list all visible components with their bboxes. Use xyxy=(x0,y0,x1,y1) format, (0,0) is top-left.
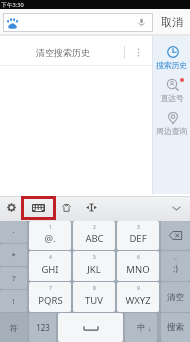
staticText: 周边查询 xyxy=(156,126,187,136)
staticText: PQRS xyxy=(38,294,63,307)
staticText: 取消 xyxy=(161,15,183,29)
staticText: :) xyxy=(173,263,178,275)
button[interactable]: 1 xyxy=(29,221,71,250)
staticText: o xyxy=(174,256,177,261)
staticText: ! xyxy=(12,296,15,306)
button[interactable]: ! xyxy=(0,290,27,312)
staticText: JKL xyxy=(87,263,101,276)
staticText: 下午3:30 xyxy=(1,1,24,9)
staticText: ABC xyxy=(85,232,104,245)
button[interactable]: 2 xyxy=(73,221,115,250)
button[interactable]: 取消 xyxy=(154,10,190,33)
button[interactable]: Hide keyboard xyxy=(168,200,185,217)
button[interactable]: Backspace xyxy=(161,221,190,250)
staticText: 6 xyxy=(137,254,140,261)
staticText: WXYZ xyxy=(125,294,151,307)
button[interactable]: 7 xyxy=(29,282,71,312)
staticText: 搜索 xyxy=(167,322,184,333)
staticText: 123 xyxy=(36,322,50,333)
button[interactable]: Settings xyxy=(3,199,20,216)
staticText: 5 xyxy=(93,254,96,261)
button[interactable]: 5 xyxy=(73,251,115,281)
button[interactable]: 9 xyxy=(117,282,159,312)
staticText: 搜索历史 xyxy=(156,60,187,70)
button[interactable]: 搜索 xyxy=(161,313,190,342)
button[interactable]: * xyxy=(0,244,27,266)
button[interactable]: 8 xyxy=(73,282,115,312)
staticText: @. xyxy=(44,232,56,245)
staticText: MNO xyxy=(126,263,150,276)
staticText: 8 xyxy=(93,285,96,292)
button[interactable]: 搜索历史 xyxy=(153,42,190,71)
staticText: 3 xyxy=(137,224,140,231)
staticText: * xyxy=(11,250,16,260)
button[interactable]: :) xyxy=(161,251,190,281)
button[interactable]: 6 xyxy=(117,251,159,281)
staticText: ? xyxy=(12,273,16,283)
button[interactable]: 周边查询 xyxy=(153,108,190,137)
button[interactable]: 清空 xyxy=(161,282,190,312)
staticText: TUV xyxy=(85,294,103,307)
button[interactable]: 符 xyxy=(0,313,27,342)
button[interactable]: 清空搜索历史 xyxy=(0,40,125,64)
button[interactable]: Theme xyxy=(58,199,74,215)
other: Voice search xyxy=(137,18,146,27)
staticText: GHI xyxy=(41,263,59,276)
staticText: 2 xyxy=(93,224,96,231)
staticText: 中 xyxy=(137,322,146,333)
button[interactable]: ? xyxy=(0,267,27,289)
staticText: 7 xyxy=(49,285,52,292)
staticText: ￬ xyxy=(148,326,151,332)
button[interactable]: More options xyxy=(128,43,148,61)
staticText: 清空 xyxy=(167,292,184,303)
staticText: 直达号 xyxy=(160,93,184,103)
button[interactable]: 3 xyxy=(117,221,159,250)
button[interactable]: 中 xyxy=(125,313,157,342)
staticText: · xyxy=(12,227,15,237)
button[interactable] xyxy=(58,313,123,342)
button[interactable]: · xyxy=(0,221,27,243)
staticText: 9 xyxy=(137,285,140,292)
staticText: 1 xyxy=(49,224,52,231)
button[interactable]: 直达号 xyxy=(153,75,190,104)
staticText: 符 xyxy=(10,323,18,333)
button[interactable]: 123 xyxy=(29,313,56,342)
staticText: 4 xyxy=(49,254,52,261)
button[interactable]: Move cursor xyxy=(83,199,99,215)
button[interactable]: 4 xyxy=(29,251,71,281)
button[interactable]: Voice search xyxy=(3,13,153,32)
staticText: 清空搜索历史 xyxy=(36,47,90,58)
staticText: DEF xyxy=(129,232,147,245)
button[interactable]: Keyboard layout xyxy=(21,196,56,220)
